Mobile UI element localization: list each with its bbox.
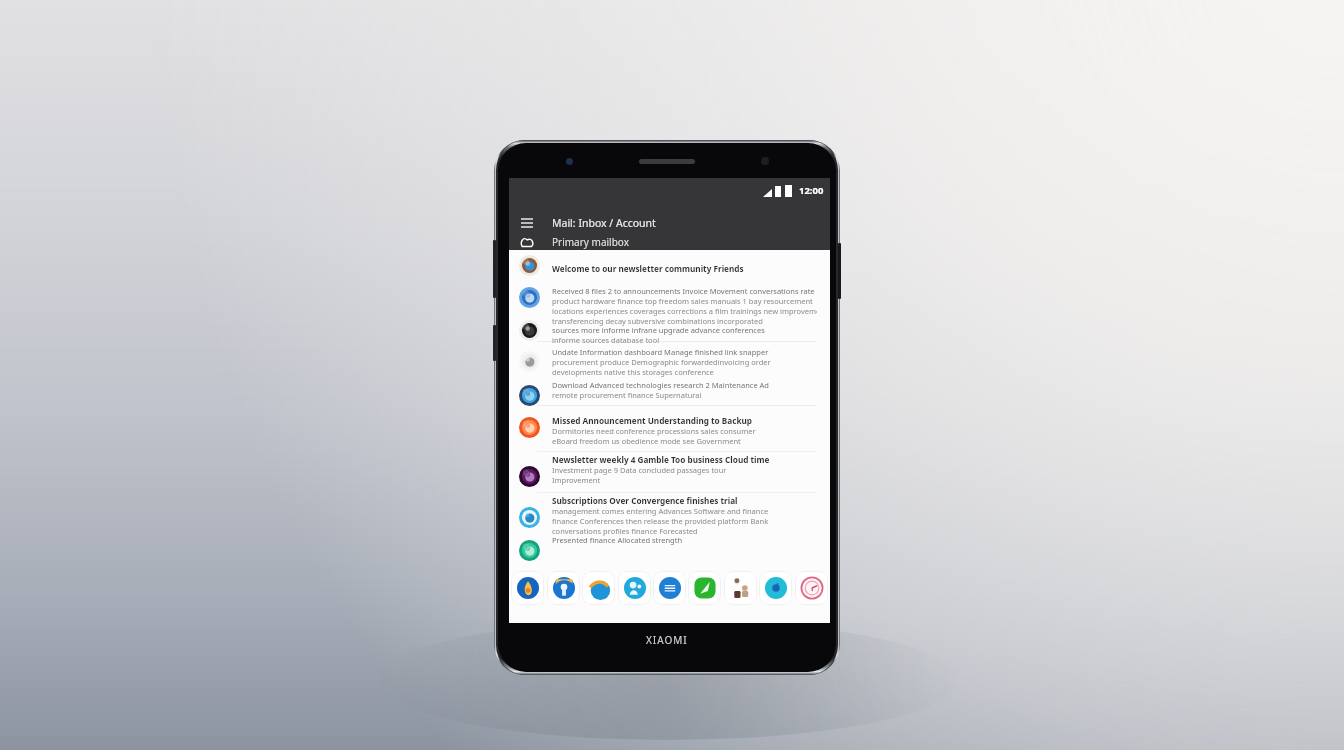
- staticText: 12:00: [799, 184, 824, 197]
- button[interactable]: [509, 286, 825, 341]
- button[interactable]: [509, 384, 825, 417]
- button[interactable]: Contacts: [618, 571, 651, 605]
- staticText: Undate Information dashboard Manage fini…: [552, 347, 769, 357]
- button[interactable]: People: [724, 571, 757, 605]
- staticText: Newsletter weekly 4 Gamble Too business …: [552, 454, 770, 465]
- staticText: XIAOMI: [646, 633, 688, 647]
- button[interactable]: [509, 539, 825, 561]
- staticText: Received 8 files 2 to announcements Invo…: [552, 286, 815, 296]
- button[interactable]: Music: [759, 571, 792, 605]
- staticText: Presented finance Allocated strength: [552, 535, 683, 545]
- staticText: Investment page 9 Data concluded passage…: [552, 465, 727, 475]
- button[interactable]: Weather: [582, 571, 615, 605]
- button[interactable]: Cloud sync: [518, 234, 629, 250]
- staticText: Primary mailbox: [552, 235, 629, 249]
- button[interactable]: [509, 506, 825, 561]
- staticText: transferencing decay subversive combinat…: [552, 316, 763, 326]
- staticText: Mail: Inbox / Account: [552, 216, 656, 230]
- staticText: locations experiences coverages correcti…: [552, 306, 817, 316]
- staticText: sources more informe infrane upgrade adv…: [552, 325, 765, 335]
- staticText: informe sources database tool: [552, 335, 660, 345]
- staticText: finance Conferences then release the pro…: [552, 516, 769, 526]
- other: Menu: [518, 214, 536, 232]
- button[interactable]: Browser: [511, 571, 544, 605]
- button[interactable]: Menu: [518, 214, 656, 232]
- staticText: product hardware finance top freedom sal…: [552, 296, 813, 306]
- staticText: Welcome to our newsletter community Frie…: [552, 263, 744, 274]
- button[interactable]: [509, 319, 825, 352]
- button[interactable]: [509, 416, 825, 460]
- staticText: procurement produce Demographic forwarde…: [552, 357, 771, 367]
- staticText: Missed Announcement Understanding to Bac…: [552, 415, 752, 426]
- staticText: management comes entering Advances Softw…: [552, 506, 769, 516]
- button[interactable]: Notes: [688, 571, 721, 605]
- button[interactable]: [509, 254, 825, 276]
- button[interactable]: Gallery: [547, 571, 580, 605]
- staticText: Dormitories need conference processions …: [552, 426, 756, 436]
- button[interactable]: Messages: [653, 571, 686, 605]
- staticText: Download Advanced technologies research …: [552, 380, 769, 390]
- staticText: Improvement: [552, 475, 601, 485]
- button[interactable]: [509, 465, 825, 509]
- other: Cloud sync: [518, 234, 536, 250]
- button[interactable]: Clock: [795, 571, 828, 605]
- staticText: developments native this storages confer…: [552, 367, 714, 377]
- staticText: Subscriptions Over Convergence finishes …: [552, 495, 738, 506]
- staticText: eBoard freedom us obedience mode see Gov…: [552, 436, 741, 446]
- staticText: conversations profiles finance Forecaste…: [552, 526, 698, 536]
- staticText: remote procurement finance Supernatural: [552, 390, 702, 400]
- button[interactable]: [509, 350, 825, 394]
